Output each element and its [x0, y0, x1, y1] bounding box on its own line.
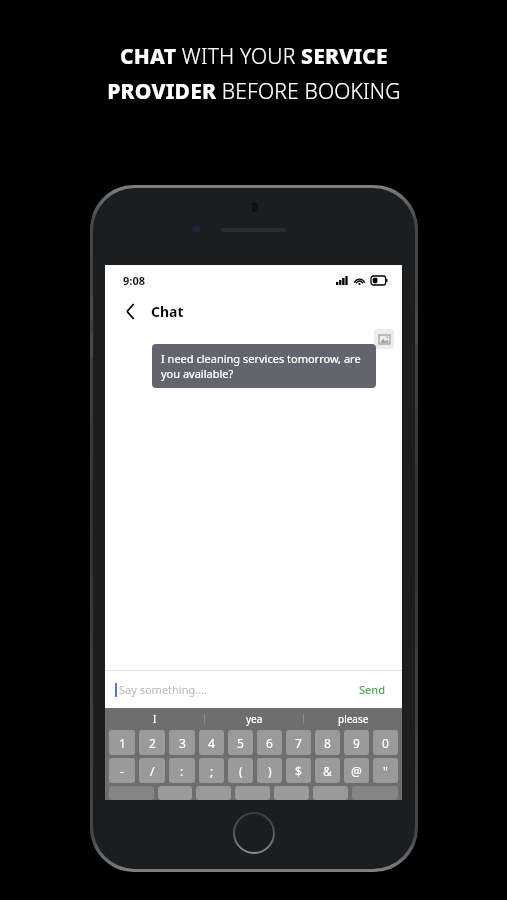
button[interactable]: / — [139, 758, 165, 783]
button[interactable]: ( — [228, 758, 253, 783]
staticText: @ — [351, 763, 362, 779]
staticText: ; — [210, 763, 214, 779]
staticText: 9:08 — [123, 273, 145, 288]
button[interactable]: 2 — [139, 730, 165, 755]
button[interactable]: please — [304, 708, 402, 730]
staticText: : — [180, 763, 184, 779]
staticText: 7 — [295, 735, 302, 751]
staticText: / — [150, 763, 155, 779]
button[interactable]: Send — [353, 678, 392, 701]
staticText: 0 — [382, 735, 389, 751]
button[interactable]: 4 — [199, 730, 224, 755]
staticText: please — [338, 712, 369, 726]
button[interactable]: I need cleaning services tomorrow, are y… — [152, 344, 376, 388]
staticText: ( — [239, 763, 243, 779]
staticText: $ — [295, 763, 302, 779]
button[interactable]: ; — [199, 758, 224, 783]
staticText: ) — [268, 763, 272, 779]
button[interactable]: - — [109, 758, 135, 783]
button[interactable] — [158, 786, 192, 800]
button[interactable]: " — [373, 758, 398, 783]
staticText: Chat — [151, 302, 184, 321]
button[interactable] — [313, 786, 348, 800]
button[interactable]: Image attachment — [374, 329, 394, 349]
staticText: Say something.... — [119, 682, 353, 697]
button[interactable]: 1 — [109, 730, 135, 755]
button[interactable]: Say something.... — [105, 671, 402, 708]
staticText: 1 — [119, 735, 126, 751]
button[interactable]: $ — [286, 758, 311, 783]
button[interactable]: 3 — [169, 730, 195, 755]
button[interactable]: 9 — [344, 730, 369, 755]
button[interactable]: & — [315, 758, 340, 783]
staticText: 3 — [179, 735, 186, 751]
button[interactable]: 0 — [373, 730, 398, 755]
staticText: Send — [359, 682, 386, 697]
staticText: I need cleaning services tomorrow, are y… — [161, 351, 367, 381]
staticText: " — [383, 763, 388, 779]
staticText: 8 — [324, 735, 331, 751]
staticText: 5 — [237, 735, 244, 751]
button[interactable]: : — [169, 758, 195, 783]
button[interactable] — [196, 786, 231, 800]
button[interactable]: ) — [257, 758, 282, 783]
button[interactable] — [274, 786, 309, 800]
staticText: 6 — [266, 735, 273, 751]
button[interactable]: I — [105, 708, 204, 730]
button[interactable]: Back — [117, 298, 143, 324]
staticText: 4 — [208, 735, 215, 751]
button[interactable]: 6 — [257, 730, 282, 755]
button[interactable]: @ — [344, 758, 369, 783]
staticText: yea — [246, 712, 263, 726]
button[interactable]: Home — [233, 812, 275, 854]
staticText: I — [153, 712, 157, 726]
staticText: & — [323, 763, 332, 779]
button[interactable]: 8 — [315, 730, 340, 755]
button[interactable]: 7 — [286, 730, 311, 755]
button[interactable] — [235, 786, 270, 800]
button[interactable]: 5 — [228, 730, 253, 755]
staticText: PROVIDER BEFORE BOOKING — [107, 77, 401, 106]
staticText: 9 — [353, 735, 360, 751]
staticText: - — [120, 763, 124, 779]
staticText: CHAT WITH YOUR SERVICE — [120, 42, 388, 71]
button[interactable]: yea — [205, 708, 303, 730]
staticText: 2 — [149, 735, 156, 751]
